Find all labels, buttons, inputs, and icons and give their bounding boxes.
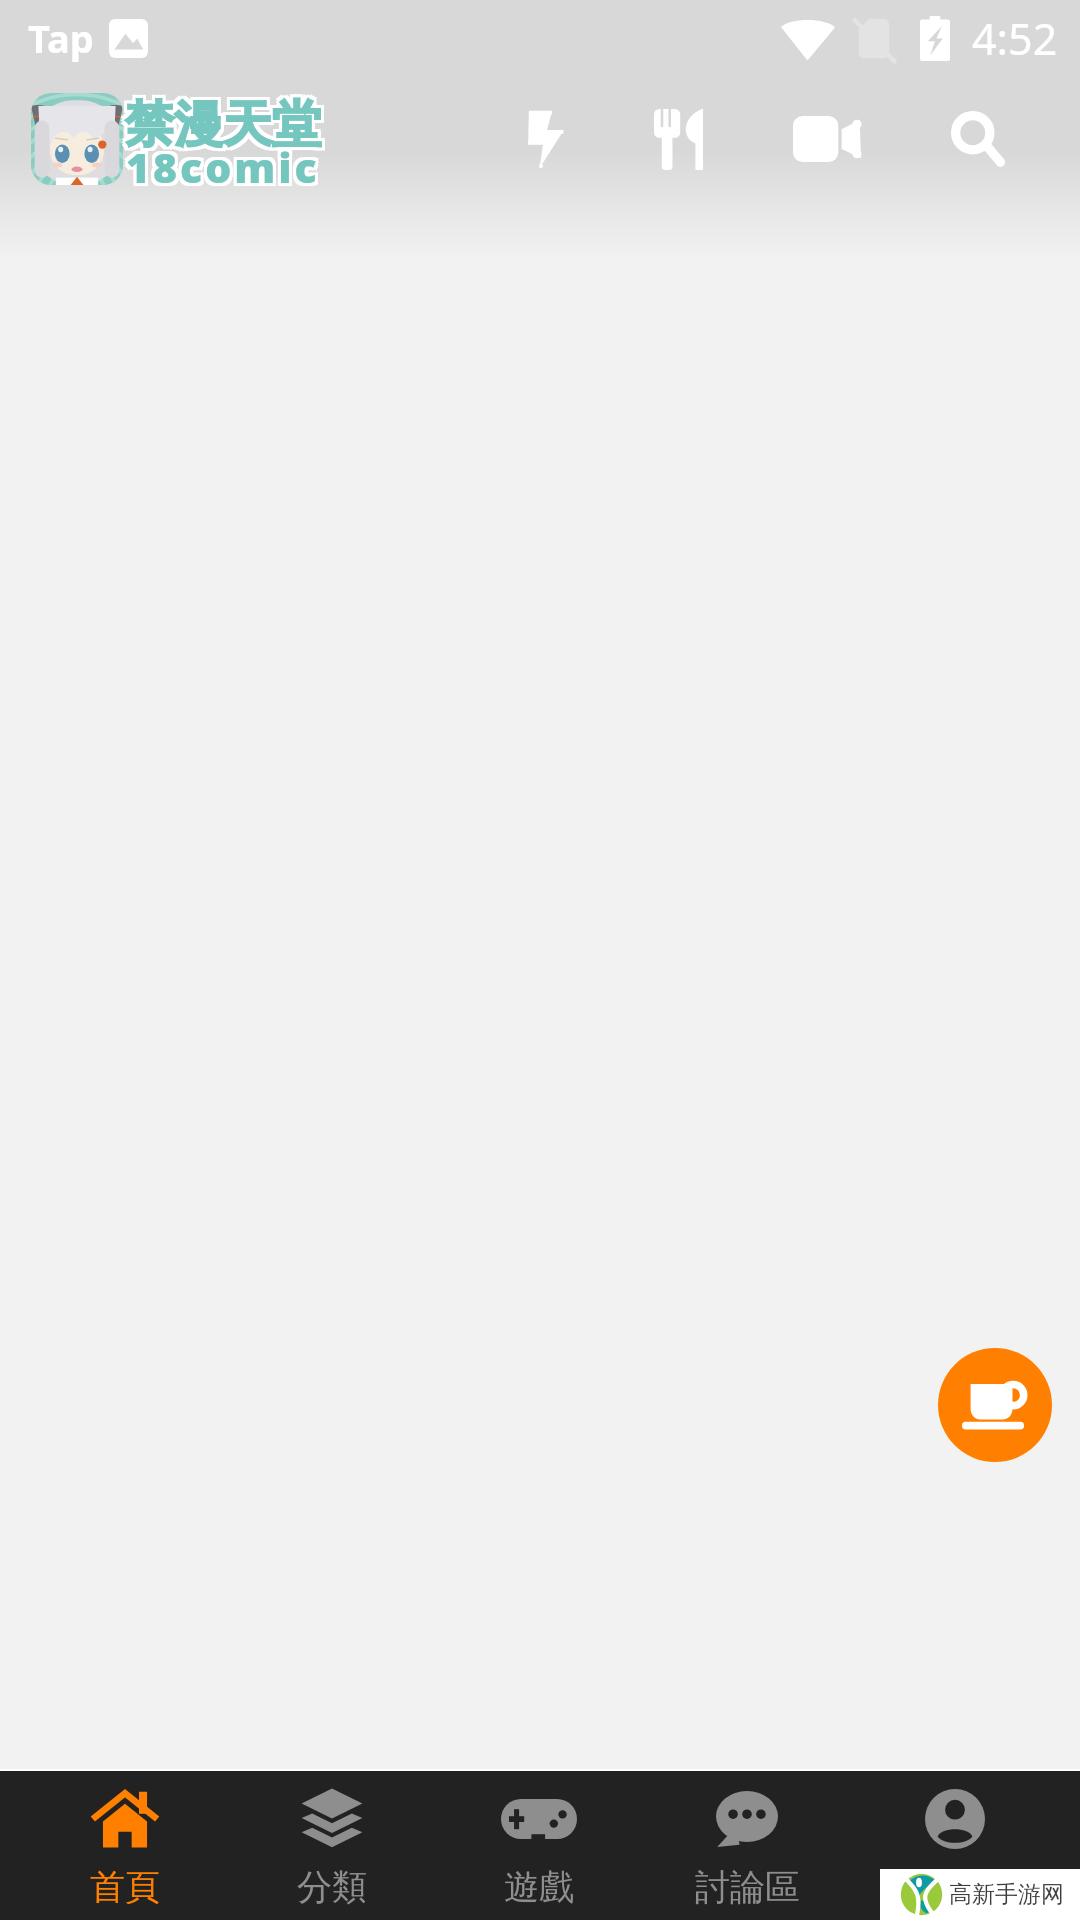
staticText: 禁漫天堂 (122, 97, 318, 159)
button[interactable] (851, 1771, 1059, 1920)
staticText: Tap (28, 12, 94, 64)
staticText: 18comic (129, 139, 323, 195)
staticText: 18comic (129, 142, 323, 198)
staticText: 禁漫天堂 (128, 91, 324, 153)
button[interactable]: 首頁 (21, 1771, 228, 1920)
staticText: 18comic (123, 139, 317, 195)
staticText: 禁漫天堂 (128, 94, 324, 156)
staticText: 遊戲 (504, 1865, 574, 1909)
button[interactable]: 討論區 (643, 1771, 851, 1920)
staticText: 18comic (123, 136, 317, 192)
button[interactable]: 遊戲 (435, 1771, 643, 1920)
staticText: 18comic (129, 136, 323, 192)
staticText: 禁漫天堂 (128, 97, 324, 159)
button[interactable]: Coffee break (938, 1348, 1052, 1462)
staticText: 首頁 (90, 1865, 160, 1909)
staticText: 18comic (126, 139, 320, 195)
staticText: 討論區 (695, 1865, 800, 1909)
button[interactable]: 禁漫天堂 (31, 80, 321, 198)
staticText: 18comic (126, 142, 320, 198)
staticText: 分類 (297, 1865, 367, 1909)
staticText: 高新手游网 (949, 1880, 1064, 1909)
staticText: 18comic (126, 136, 320, 192)
staticText: 禁漫天堂 (125, 91, 321, 153)
staticText: 18comic (123, 142, 317, 198)
staticText: 禁漫天堂 (125, 94, 321, 156)
staticText: 禁漫天堂 (125, 97, 321, 159)
staticText: 禁漫天堂 (122, 91, 318, 153)
button[interactable]: 分類 (228, 1771, 435, 1920)
button[interactable]: Food (647, 99, 710, 179)
staticText: 4:52 (972, 9, 1058, 68)
staticText: 禁漫天堂 (122, 94, 318, 156)
button[interactable]: Flash (520, 99, 572, 179)
button[interactable]: Search (944, 99, 1012, 179)
button[interactable]: Video (786, 99, 868, 179)
